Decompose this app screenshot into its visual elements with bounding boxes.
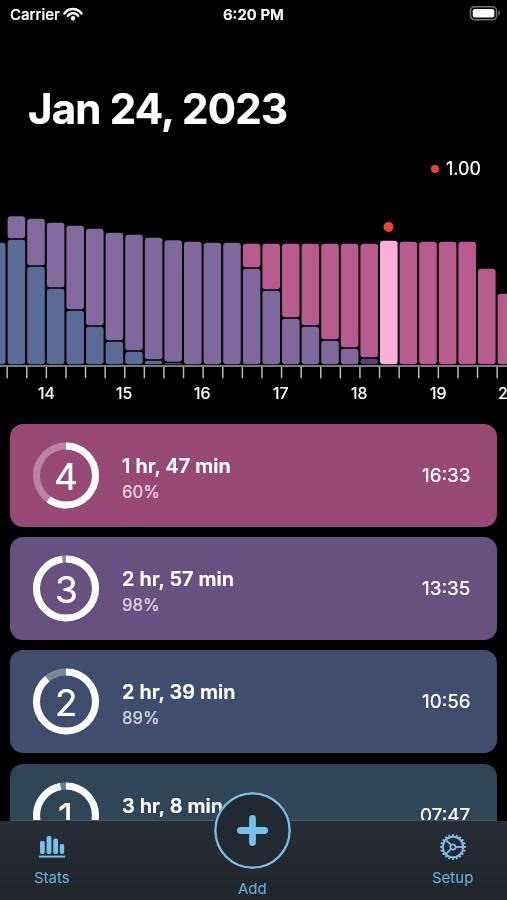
staticText: 3 xyxy=(55,567,78,612)
staticText: 17 xyxy=(273,383,289,402)
button[interactable]: 3 xyxy=(10,537,497,640)
staticText: 10:56 xyxy=(422,690,471,713)
staticText: 6:20 PM xyxy=(223,5,284,23)
staticText: 1.00 xyxy=(446,158,481,180)
staticText: 14 xyxy=(38,383,55,402)
staticText: Add xyxy=(238,879,267,897)
button[interactable] xyxy=(214,792,291,869)
staticText: Jan 24, 2023 xyxy=(28,83,288,134)
staticText: 1 hr, 47 min xyxy=(122,454,231,478)
staticText: Setup xyxy=(432,868,474,886)
staticText: 2 xyxy=(55,680,78,725)
staticText: Carrier xyxy=(10,5,60,23)
staticText: 98% xyxy=(122,595,160,616)
staticText: 18 xyxy=(351,383,368,402)
staticText: Stats xyxy=(34,868,70,886)
button[interactable]: Setup xyxy=(417,824,489,894)
button[interactable]: 2 xyxy=(10,650,497,753)
staticText: 16:33 xyxy=(422,464,471,487)
staticText: 19 xyxy=(430,383,447,402)
staticText: 20 xyxy=(498,383,507,402)
staticText: 2 hr, 39 min xyxy=(122,680,236,704)
staticText: 15 xyxy=(116,383,133,402)
button[interactable]: Stats xyxy=(16,824,88,894)
button[interactable]: 4 xyxy=(10,424,497,527)
staticText: 16 xyxy=(194,383,211,402)
staticText: 89% xyxy=(122,708,160,729)
staticText: 13:35 xyxy=(422,577,471,600)
staticText: 2 hr, 57 min xyxy=(122,567,235,591)
staticText: 4 xyxy=(54,454,78,499)
staticText: 3 hr, 8 min xyxy=(122,794,224,818)
button[interactable]: 1 xyxy=(10,764,497,867)
staticText: 60% xyxy=(122,482,160,503)
staticText: 07:47 xyxy=(420,804,471,827)
staticText: 1 xyxy=(58,794,74,839)
